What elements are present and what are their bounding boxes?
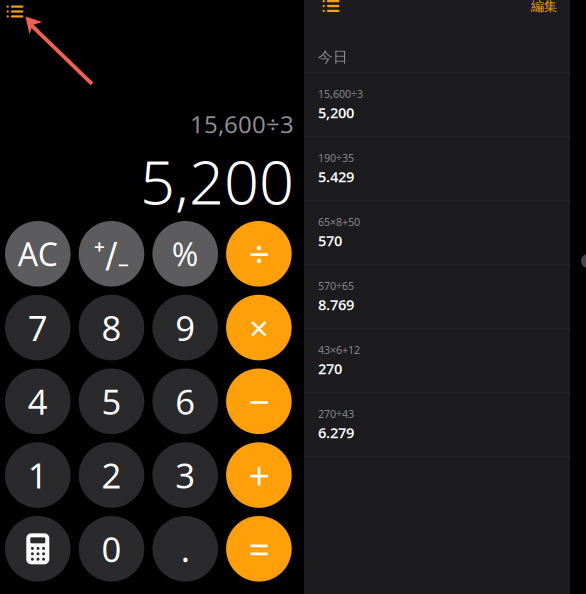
staticText: 9 bbox=[175, 304, 195, 350]
staticText: 5 bbox=[101, 378, 121, 424]
staticText: AC bbox=[18, 233, 58, 275]
button[interactable]: 270÷43 bbox=[304, 393, 570, 456]
staticText: 570 bbox=[318, 231, 342, 250]
staticText: 15,600÷3 bbox=[190, 108, 294, 140]
staticText: 8 bbox=[101, 304, 121, 350]
button[interactable]: 7 bbox=[5, 295, 71, 360]
staticText: ÷ bbox=[248, 229, 269, 279]
button[interactable]: 4 bbox=[5, 368, 71, 434]
staticText: 6.279 bbox=[318, 423, 354, 442]
button[interactable]: 9 bbox=[152, 295, 218, 360]
staticText: ⁺∕₋ bbox=[93, 231, 129, 277]
button[interactable]: 15,600÷3 bbox=[304, 73, 570, 136]
staticText: 編集 bbox=[531, 0, 557, 14]
staticText: 15,600÷3 bbox=[318, 87, 363, 101]
staticText: 270 bbox=[318, 359, 342, 378]
staticText: 7 bbox=[28, 304, 48, 350]
staticText: 5.429 bbox=[318, 167, 354, 186]
button[interactable]: ⁺∕₋ bbox=[79, 221, 144, 287]
button[interactable]: ÷ bbox=[226, 221, 292, 287]
staticText: % bbox=[172, 233, 199, 275]
staticText: 今日 bbox=[318, 48, 348, 66]
button[interactable]: . bbox=[152, 516, 218, 582]
staticText: − bbox=[248, 376, 269, 426]
staticText: 3 bbox=[175, 452, 195, 498]
button[interactable]: 190÷35 bbox=[304, 137, 570, 200]
staticText: 65×8+50 bbox=[318, 215, 360, 229]
button[interactable]: + bbox=[226, 442, 292, 508]
staticText: 5,200 bbox=[318, 103, 354, 122]
button[interactable]: 編集 bbox=[526, 0, 562, 19]
staticText: × bbox=[249, 304, 269, 350]
button[interactable]: 65×8+50 bbox=[304, 201, 570, 264]
button[interactable]: 43×6+12 bbox=[304, 329, 570, 392]
staticText: 190÷35 bbox=[318, 151, 354, 165]
button[interactable]: 570÷65 bbox=[304, 265, 570, 328]
staticText: 8.769 bbox=[318, 295, 354, 314]
staticText: 270÷43 bbox=[318, 407, 354, 421]
button[interactable]: 2 bbox=[79, 442, 144, 508]
button[interactable]: 1 bbox=[5, 442, 71, 508]
button[interactable]: Calculator bbox=[5, 516, 71, 582]
button[interactable]: 3 bbox=[152, 442, 218, 508]
staticText: + bbox=[248, 450, 269, 500]
button[interactable]: − bbox=[226, 368, 292, 434]
button[interactable]: 6 bbox=[152, 368, 218, 434]
button[interactable]: % bbox=[152, 221, 218, 287]
staticText: 6 bbox=[175, 378, 195, 424]
staticText: 2 bbox=[101, 452, 121, 498]
button[interactable]: AC bbox=[5, 221, 71, 287]
button[interactable]: 8 bbox=[79, 295, 144, 360]
button[interactable]: 5 bbox=[79, 368, 144, 434]
staticText: 570÷65 bbox=[318, 279, 354, 293]
button[interactable]: History bbox=[2, 0, 28, 23]
button[interactable]: History bbox=[317, 0, 345, 18]
button[interactable]: = bbox=[226, 516, 292, 582]
staticText: 4 bbox=[28, 378, 48, 424]
staticText: 1 bbox=[28, 452, 48, 498]
staticText: = bbox=[248, 524, 269, 574]
button[interactable]: × bbox=[226, 295, 292, 360]
staticText: 0 bbox=[101, 526, 121, 572]
staticText: 5,200 bbox=[140, 140, 294, 221]
staticText: . bbox=[181, 526, 190, 572]
staticText: 43×6+12 bbox=[318, 343, 360, 357]
button[interactable]: 0 bbox=[79, 516, 144, 582]
